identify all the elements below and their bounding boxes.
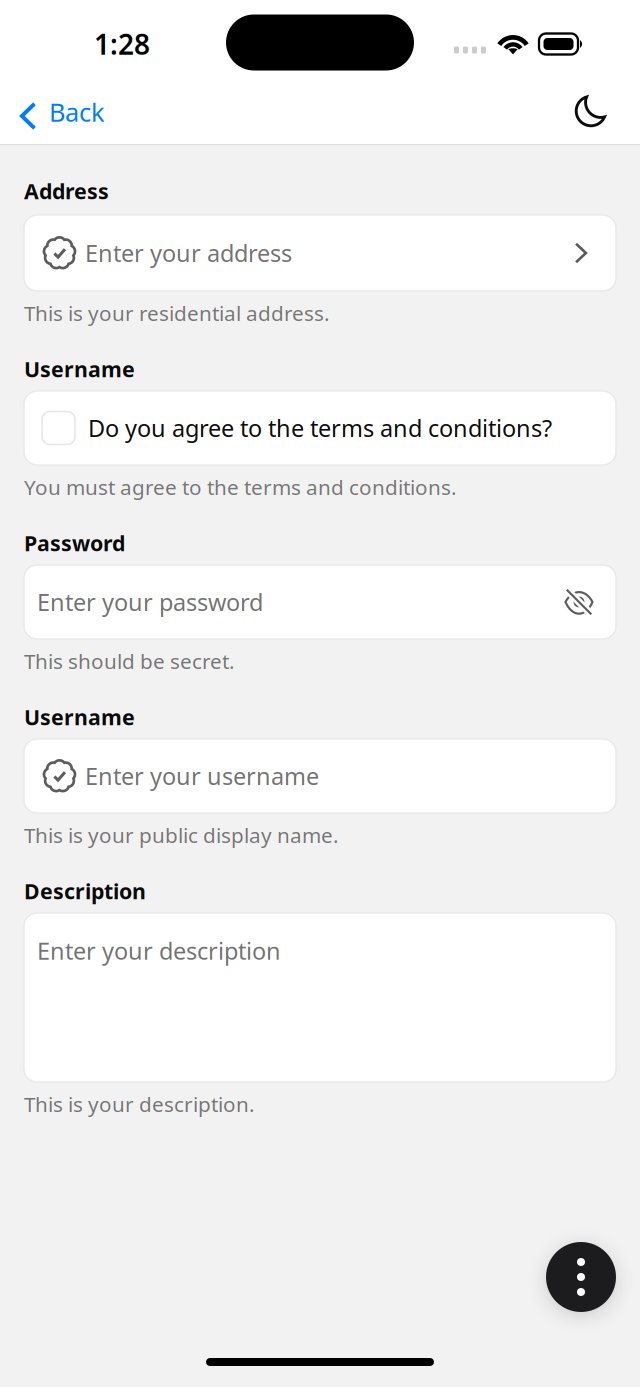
staticText: This should be secret. [24, 647, 235, 675]
button[interactable]: Back [0, 91, 109, 141]
button[interactable]: Toggle dark mode [574, 94, 640, 138]
staticText: Password [24, 529, 125, 557]
button[interactable]: More options [546, 1242, 616, 1312]
staticText: Back [49, 95, 105, 129]
staticText: This is your residential address. [24, 299, 330, 327]
staticText: This is your description. [24, 1090, 255, 1118]
staticText: This is your public display name. [24, 821, 339, 849]
staticText: Address [24, 177, 109, 205]
staticText: Username [24, 703, 135, 731]
staticText: Username [24, 355, 135, 383]
staticText: Enter your description [37, 935, 281, 966]
staticText: Enter your password [37, 586, 263, 618]
staticText: Do you agree to the terms and conditions… [88, 412, 552, 444]
staticText: 1:28 [94, 25, 150, 63]
staticText: Enter your address [85, 237, 292, 269]
staticText: You must agree to the terms and conditio… [24, 473, 457, 501]
staticText: Enter your username [85, 760, 319, 792]
staticText: Description [24, 877, 146, 905]
